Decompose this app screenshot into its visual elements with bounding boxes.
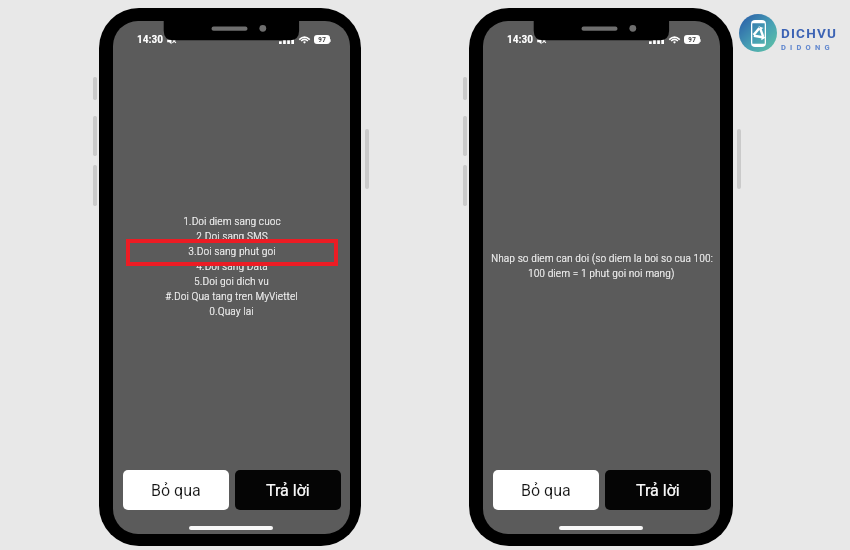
staticText: Nhap so diem can doi (so diem la boi so … [491, 251, 713, 265]
staticText: 2.Doi sang SMS [196, 229, 268, 243]
staticText: 1.Doi diem sang cuoc [183, 214, 281, 228]
staticText: Bỏ qua [151, 481, 201, 500]
staticText: 3.Doi sang phut goi [188, 244, 276, 258]
button[interactable]: Trả lời [605, 470, 711, 510]
staticText: 100 diem = 1 phut goi noi mang) [528, 266, 675, 280]
staticText: Trả lời [636, 481, 680, 500]
button[interactable]: Bỏ qua [123, 470, 229, 510]
button[interactable]: Trả lời [235, 470, 341, 510]
staticText: 14:30 [507, 32, 533, 45]
staticText: Trả lời [266, 481, 310, 500]
staticText: 0.Quay lai [209, 304, 254, 318]
other: DichVuDiDong logo [739, 14, 796, 52]
staticText: 14:30 [137, 32, 163, 45]
staticText: DICHVU [781, 25, 838, 41]
staticText: #.Doi Qua tang tren MyViettel [165, 289, 298, 303]
staticText: 5.Doi goi dich vu [194, 274, 269, 288]
staticText: 4.Doi sang Data [196, 259, 268, 273]
staticText: DIDONG [781, 43, 834, 52]
staticText: 97 [318, 35, 327, 44]
staticText: 97 [688, 35, 697, 44]
button[interactable]: Bỏ qua [493, 470, 599, 510]
staticText: Bỏ qua [521, 481, 571, 500]
